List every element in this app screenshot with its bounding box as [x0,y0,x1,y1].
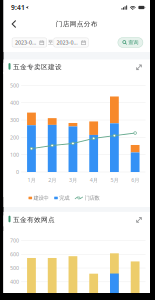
staticText: 建设中 [34,195,49,201]
staticText: 5月 [110,176,118,184]
staticText: 0 [16,168,19,176]
staticText: 五金有效网点 [13,215,55,224]
button[interactable]: 查询 [118,38,143,47]
staticText: 9:41 [11,3,25,12]
staticText: 2月 [48,176,56,184]
staticText: 6月 [131,176,139,184]
staticText: 400 [10,99,19,106]
button[interactable]: 2023-01-26 [12,38,47,47]
staticText: 400 [10,278,19,285]
staticText: 4月 [90,176,98,184]
staticText: 600 [10,251,19,258]
staticText: 3月 [69,176,77,184]
staticText: 500 [10,82,19,89]
staticText: 至 [48,39,53,45]
staticText: 2023-01-26 [15,39,38,46]
staticText: 1月 [27,176,35,184]
button[interactable]: Back [7,16,21,32]
staticText: 五金专卖区建设 [13,63,62,71]
staticText: 查询 [128,39,138,46]
staticText: 门店数 [84,195,99,201]
staticText: 完成 [59,195,69,201]
staticText: 200 [10,134,19,141]
staticText: 300 [10,116,19,124]
staticText: 2023-05-26 [57,39,80,46]
staticText: 500 [10,264,19,272]
staticText: 门店网点分布 [56,20,98,28]
button[interactable]: 2023-05-26 [54,38,88,47]
button[interactable]: Expand chart [133,214,145,225]
staticText: 100 [10,151,19,158]
button[interactable]: Expand chart [133,62,145,73]
staticText: 700 [10,237,19,244]
